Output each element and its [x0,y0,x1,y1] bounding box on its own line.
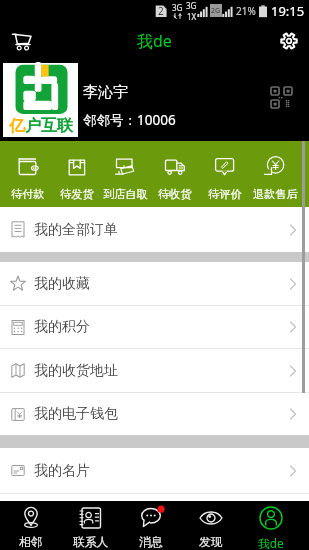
staticText: 联系人 [73,535,109,550]
staticText: 待评价 [208,187,242,201]
staticText: 待发货 [60,187,94,201]
staticText: 我的名片 [34,462,90,480]
staticText: 待收货 [158,187,192,201]
staticText: 消息 [139,535,163,550]
staticText: 我的积分 [34,318,90,336]
button[interactable]: 我的名片 [0,448,309,493]
staticText: 待付款 [11,187,45,201]
button[interactable]: 待评价 [200,141,250,207]
staticText: 我de [258,535,284,550]
staticText: 我de [137,30,172,52]
staticText: 我的全部订单 [34,221,118,239]
staticText: 2G [211,6,221,16]
staticText: 退款售后 [253,187,298,201]
staticText: 我的电子钱包 [34,405,118,423]
button[interactable]: 待发货 [52,141,101,207]
button[interactable]: Shopping cart [8,29,34,53]
button[interactable]: 发现 [181,501,241,550]
button[interactable]: 待收货 [150,141,200,207]
staticText: 发现 [199,535,223,550]
staticText: 相邻 [19,535,43,550]
button[interactable]: 到店自取 [101,141,150,207]
button[interactable]: 消息 [121,501,181,550]
button[interactable]: 我的收货地址 [0,349,309,392]
button[interactable]: 我de [241,501,301,550]
staticText: 李沁宇 [83,83,128,102]
staticText: 邻邻号：10006 [83,111,176,129]
staticText: 户互联 [25,116,73,136]
staticText: 1X [187,11,197,21]
staticText: 3G [172,2,183,13]
staticText: 2 [158,4,164,18]
button[interactable]: QR code [268,84,294,110]
staticText: 亿 [9,116,25,136]
button[interactable]: 相邻 [0,501,61,550]
button[interactable]: 我的积分 [0,306,309,348]
button[interactable]: 待付款 [3,141,52,207]
button[interactable]: 我的电子钱包 [0,393,309,435]
staticText: 21% [236,4,256,18]
staticText: 我的收藏 [34,275,90,293]
staticText: 我的收货地址 [34,362,118,380]
staticText: 到店自取 [103,187,148,201]
staticText: 19:15 [271,2,305,20]
button[interactable]: 联系人 [61,501,121,550]
button[interactable]: 我的全部订单 [0,207,309,252]
button[interactable]: 我的收藏 [0,262,309,305]
staticText: 3G [186,0,197,11]
button[interactable]: Settings [277,29,301,53]
button[interactable]: 退款售后 [250,141,300,207]
